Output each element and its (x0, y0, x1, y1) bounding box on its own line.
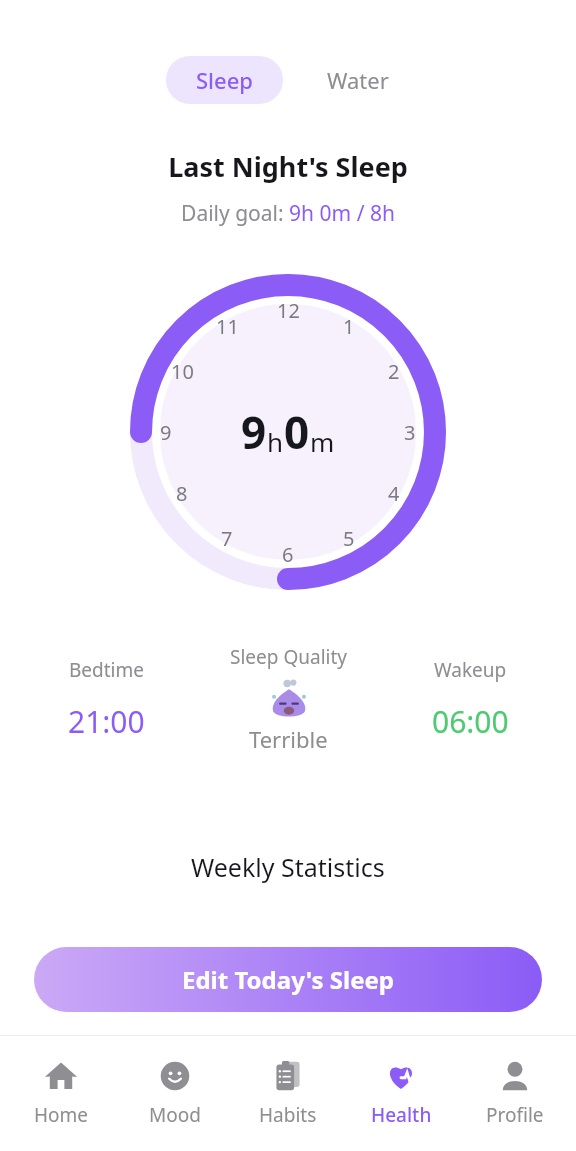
staticText: 0 (284, 402, 310, 462)
other: Habits (271, 1059, 305, 1093)
button[interactable]: Bedtime (26, 627, 186, 771)
staticText: Daily goal: 9h 0m / 8h (0, 199, 576, 228)
staticText: Bedtime (69, 657, 144, 683)
staticText: Mood (149, 1102, 201, 1128)
staticText: Sleep Quality (230, 644, 347, 670)
button[interactable]: Sleep Quality (208, 624, 368, 774)
staticText: 2 (388, 358, 400, 385)
staticText: 9 (241, 402, 267, 462)
button[interactable]: Health (349, 1055, 453, 1132)
staticText: 21:00 (68, 701, 145, 742)
staticText: h (267, 424, 284, 459)
staticText: Water (327, 65, 389, 95)
other: Profile (498, 1059, 532, 1093)
staticText: 12 (277, 297, 300, 324)
staticText: Health (371, 1102, 432, 1128)
button[interactable]: Profile (463, 1055, 567, 1132)
button[interactable]: Edit Today's Sleep (34, 947, 542, 1012)
staticText: Edit Today's Sleep (182, 963, 394, 996)
staticText: Weekly Statistics (191, 850, 385, 884)
other: Home (44, 1059, 78, 1093)
other: Health (384, 1059, 418, 1093)
button[interactable]: Weekly Statistics (33, 830, 543, 1005)
staticText: 4 (388, 480, 400, 507)
button[interactable]: Home (9, 1055, 113, 1132)
staticText: Profile (486, 1102, 544, 1128)
staticText: 5 (343, 525, 355, 552)
button[interactable]: Sleep (166, 56, 283, 104)
staticText: Terrible (249, 724, 328, 754)
other: Mood (158, 1059, 192, 1093)
staticText: 6 (282, 541, 294, 568)
staticText: 7 (221, 525, 233, 552)
staticText: 10 (171, 358, 194, 385)
staticText: Habits (259, 1102, 317, 1128)
staticText: 8 (176, 480, 188, 507)
staticText: Last Night's Sleep (0, 148, 576, 185)
button[interactable]: Wakeup (390, 627, 550, 771)
staticText: 9 (160, 419, 172, 446)
staticText: Home (34, 1102, 89, 1128)
button[interactable]: Mood (123, 1055, 227, 1132)
button[interactable]: Water (305, 56, 411, 104)
staticText: 06:00 (432, 701, 509, 742)
staticText: Wakeup (434, 657, 507, 683)
staticText: m (310, 424, 335, 459)
staticText: 11 (216, 313, 239, 340)
staticText: 3 (404, 419, 416, 446)
button[interactable]: Habits (236, 1055, 340, 1132)
staticText: Sleep (196, 65, 253, 95)
staticText: 1 (343, 313, 355, 340)
